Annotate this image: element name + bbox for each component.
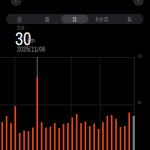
staticText: 年 <box>127 16 132 22</box>
button[interactable]: More <box>133 0 144 6</box>
button[interactable]: 年 <box>116 14 143 24</box>
staticText: km <box>27 36 35 45</box>
button[interactable]: 6か月 <box>88 14 116 24</box>
staticText: 15 <box>137 99 141 105</box>
staticText: 日 <box>17 16 22 22</box>
button[interactable]: 月 <box>61 14 88 24</box>
staticText: 2025/11/08 <box>17 44 45 53</box>
staticText: 週 <box>45 16 50 22</box>
staticText: 30 <box>15 27 31 51</box>
staticText: 月 <box>72 16 77 22</box>
button[interactable]: Back <box>10 0 21 6</box>
staticText: 30 <box>137 53 141 59</box>
staticText: 合計 <box>17 25 25 31</box>
staticText: 6か月 <box>96 16 109 22</box>
button[interactable]: 日 <box>6 14 33 24</box>
button[interactable]: 週 <box>33 14 61 24</box>
